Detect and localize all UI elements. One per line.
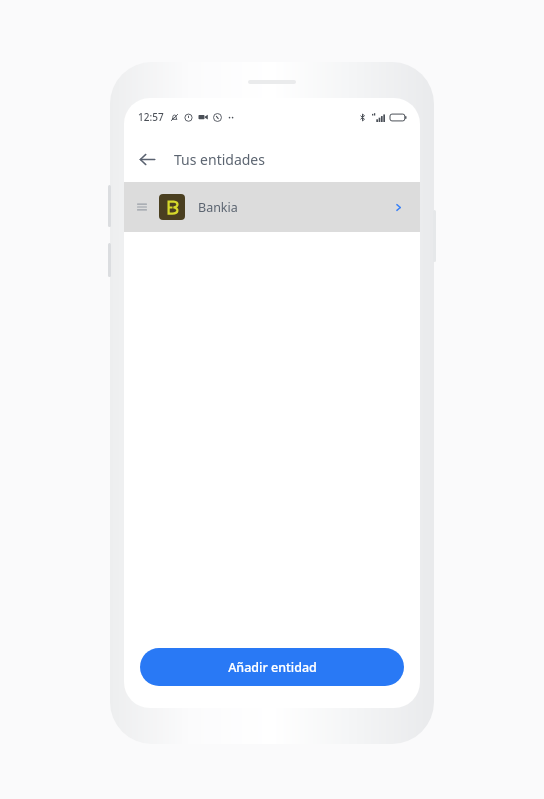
staticText: Añadir entidad — [228, 659, 317, 676]
staticText: 12:57 — [138, 110, 164, 124]
staticText: Tus entidades — [174, 150, 265, 169]
button[interactable]: Back — [130, 142, 164, 176]
button[interactable]: Añadir entidad — [140, 648, 404, 686]
staticText: Bankia — [198, 199, 238, 216]
other: Open Bankia — [388, 197, 408, 217]
button[interactable]: Bankia — [124, 182, 420, 232]
